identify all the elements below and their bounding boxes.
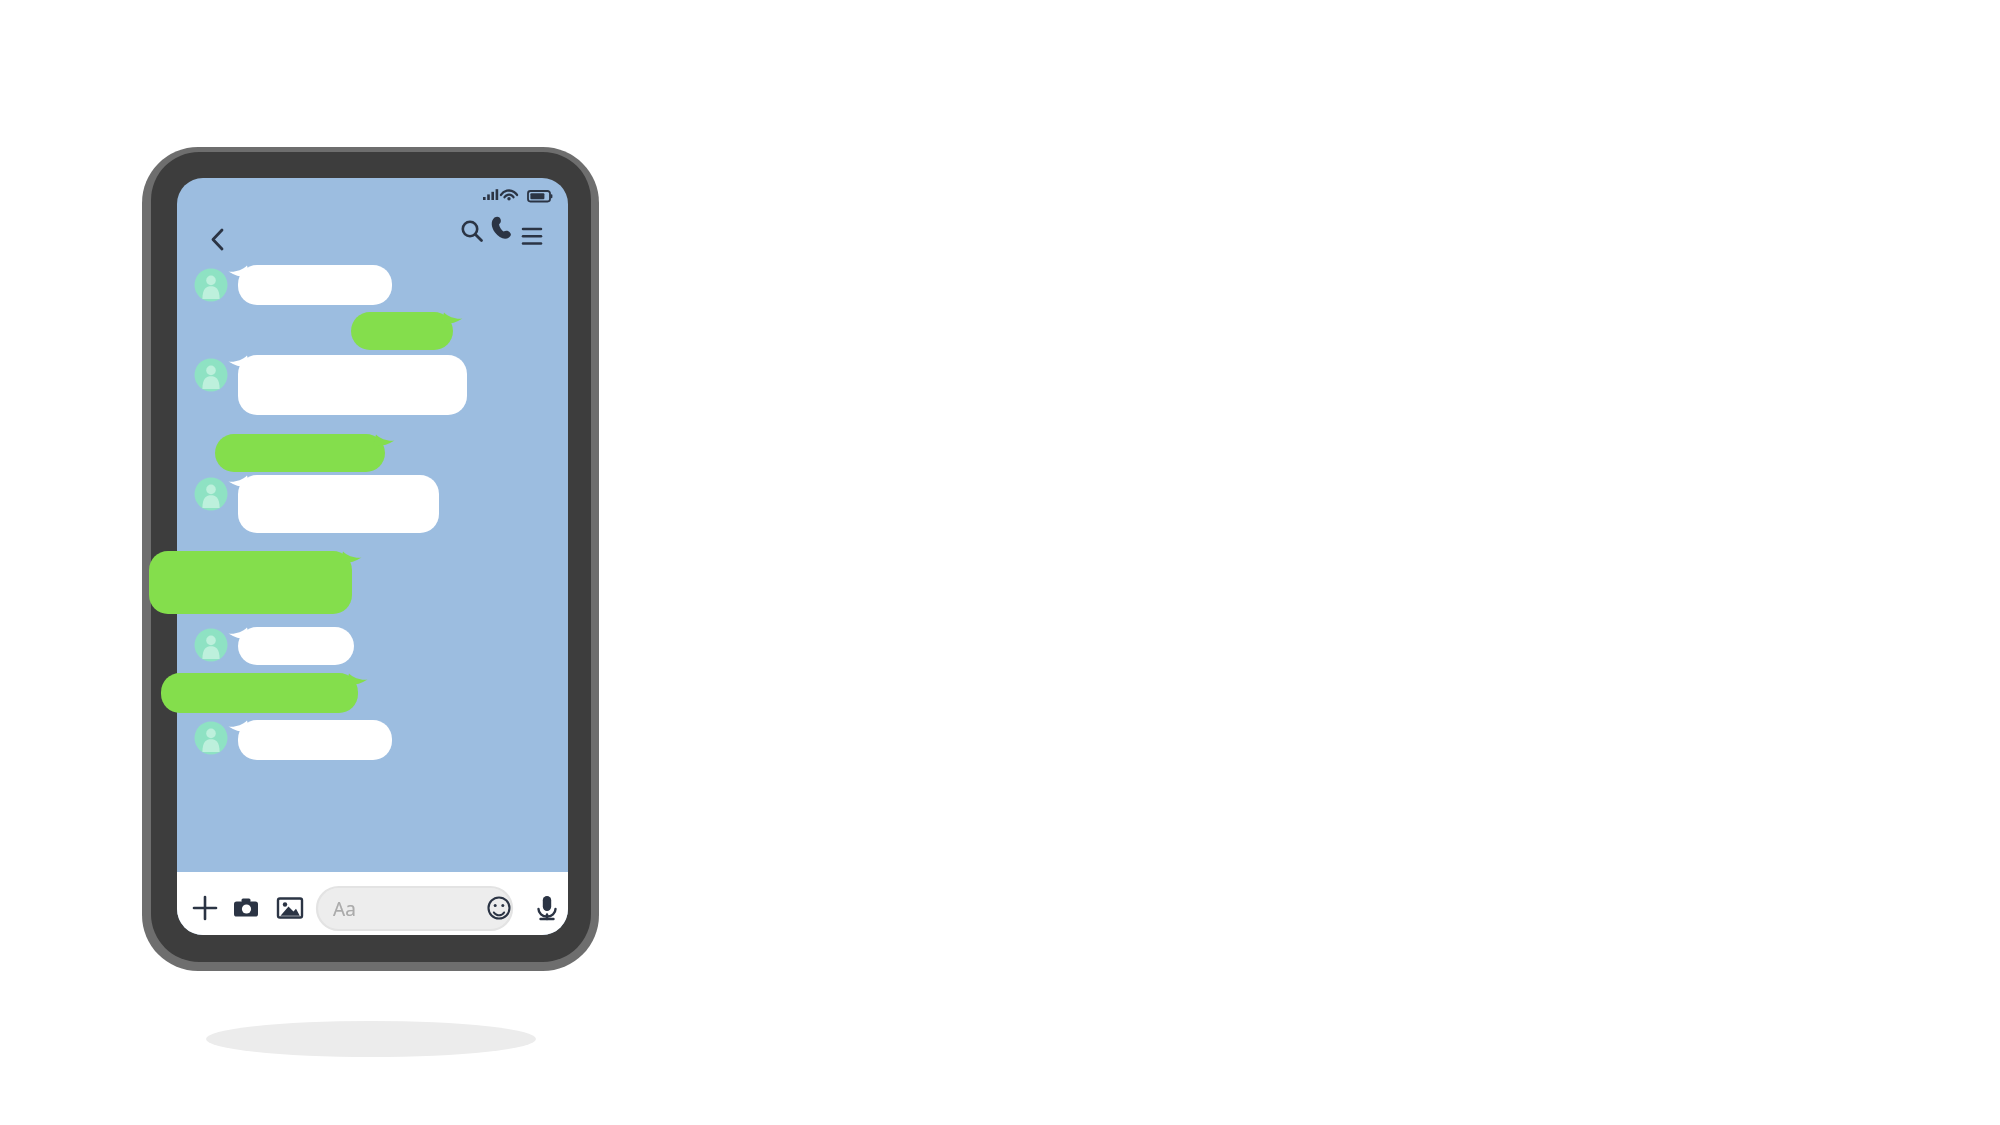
button[interactable]: Emoji: [482, 891, 516, 925]
button[interactable]: Camera: [228, 887, 266, 929]
button[interactable]: Menu: [515, 211, 549, 247]
button[interactable]: Message input: [317, 887, 512, 929]
button[interactable]: Search: [455, 211, 489, 247]
button[interactable]: Add attachment: [186, 887, 224, 929]
button[interactable]: Call: [486, 211, 518, 247]
button[interactable]: Back: [199, 207, 249, 255]
staticText: Aa: [333, 896, 356, 922]
button[interactable]: Gallery: [271, 887, 309, 929]
button[interactable]: Voice message: [530, 887, 564, 929]
